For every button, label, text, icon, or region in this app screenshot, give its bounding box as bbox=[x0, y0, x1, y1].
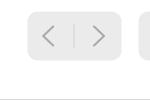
button[interactable]: Forward bbox=[75, 11, 121, 60]
button[interactable]: Back bbox=[27, 11, 73, 60]
button[interactable]: More bbox=[138, 11, 150, 60]
